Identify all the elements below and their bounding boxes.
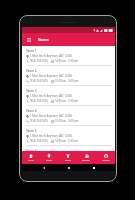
button[interactable]: Order <box>58 151 77 164</box>
staticText: 1 Main Street Anytown, ABC 12345 <box>30 74 72 78</box>
staticText: Stores <box>46 159 52 162</box>
staticText: Home <box>28 159 34 162</box>
staticText: (555) 555-5555 <box>30 79 48 83</box>
staticText: 10:00 am - 5:00 pm <box>55 79 79 83</box>
staticText: Store 5 <box>26 129 37 133</box>
staticText: Stores <box>38 37 49 42</box>
staticText: Store 2 <box>26 69 37 73</box>
staticText: Store 6 <box>26 149 37 151</box>
staticText: Account <box>102 159 110 162</box>
staticText: 10:00 am - 5:00 pm <box>55 119 79 123</box>
button[interactable]: Store 1 <box>22 46 115 66</box>
staticText: (555) 555-5555 <box>30 139 48 143</box>
staticText: (555) 555-5555 <box>30 119 48 123</box>
button[interactable]: Store 5 <box>22 126 115 146</box>
staticText: 10:00 am - 5:00 pm <box>55 59 79 63</box>
button[interactable]: Store 4 <box>22 106 115 126</box>
button[interactable]: Recents <box>90 164 97 171</box>
staticText: (555) 555-5555 <box>30 59 48 63</box>
staticText: 10:00 am - 5:00 pm <box>55 99 79 103</box>
staticText: 10:00 am - 5:00 pm <box>55 139 79 143</box>
button[interactable]: Store 2 <box>22 66 115 86</box>
staticText: (555) 555-5555 <box>30 99 48 103</box>
staticText: 1 Main Street Anytown, ABC 12345 <box>30 114 72 118</box>
button[interactable]: Account <box>96 151 115 164</box>
staticText: 1 Main Street Anytown, ABC 12345 <box>30 54 72 58</box>
button[interactable]: Home <box>22 151 40 164</box>
button[interactable]: Home <box>65 164 72 171</box>
button[interactable]: Store 6 <box>22 146 115 151</box>
button[interactable]: Back <box>40 164 47 171</box>
staticText: Order <box>65 159 71 162</box>
staticText: Rewards <box>82 159 91 162</box>
staticText: Store 1 <box>26 49 37 53</box>
staticText: Store 3 <box>26 89 37 93</box>
button[interactable]: Menu <box>24 35 33 44</box>
button[interactable]: Stores <box>40 151 58 164</box>
staticText: Store 4 <box>26 109 37 113</box>
button[interactable]: Store 3 <box>22 86 115 106</box>
button[interactable]: Rewards <box>77 151 96 164</box>
staticText: 1 Main Street Anytown, ABC 12345 <box>30 134 72 138</box>
staticText: 1 Main Street Anytown, ABC 12345 <box>30 94 72 98</box>
